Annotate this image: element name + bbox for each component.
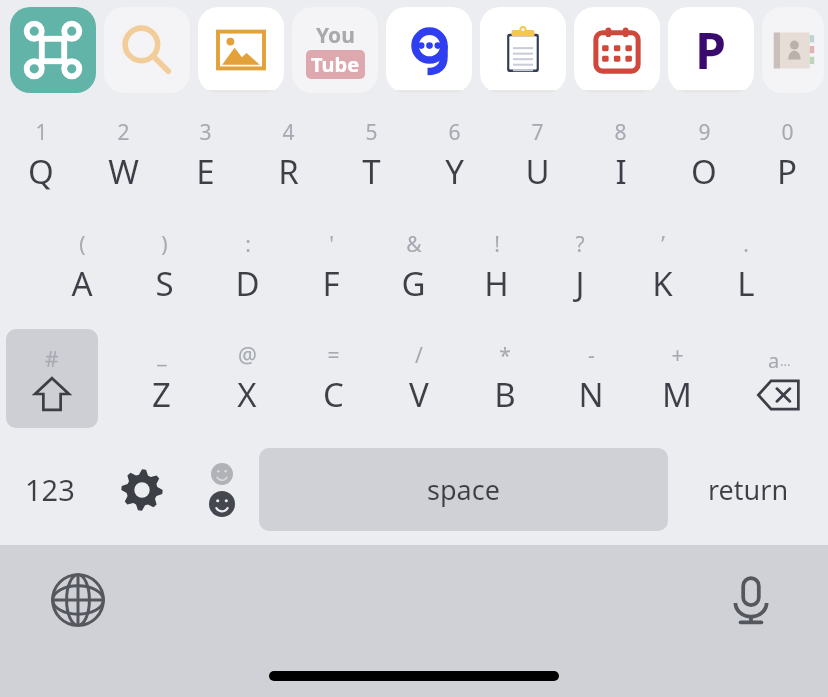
staticText: ?: [575, 230, 585, 259]
staticText: P: [777, 149, 797, 194]
button[interactable]: Shift: [6, 329, 98, 428]
staticText: J: [575, 261, 585, 306]
button[interactable]: 2: [82, 100, 164, 212]
button[interactable]: 0: [745, 100, 828, 212]
staticText: R: [278, 149, 299, 194]
button[interactable]: &: [372, 212, 455, 323]
staticText: -: [588, 341, 595, 370]
staticText: &: [406, 230, 422, 259]
staticText: 7: [531, 118, 544, 147]
button[interactable]: .: [704, 212, 787, 323]
button[interactable]: Emoji: [184, 434, 259, 545]
staticText: M: [662, 372, 692, 417]
button[interactable]: Voice input: [673, 545, 828, 655]
button[interactable]: 1: [0, 100, 82, 212]
staticText: .: [743, 230, 749, 259]
staticText: #: [45, 345, 59, 374]
staticText: Z: [152, 372, 171, 417]
staticText: 8: [614, 118, 627, 147]
staticText: 4: [282, 118, 295, 147]
staticText: =: [327, 341, 340, 370]
staticText: 9: [698, 118, 711, 147]
button[interactable]: App shortcut: [292, 7, 378, 93]
staticText: :: [245, 230, 251, 259]
staticText: I: [615, 149, 627, 194]
button[interactable]: 5: [330, 100, 413, 212]
staticText: A: [71, 261, 93, 306]
button[interactable]: (: [40, 212, 123, 323]
staticText: ’: [661, 230, 665, 259]
button[interactable]: return: [668, 434, 828, 545]
staticText: T: [362, 149, 381, 194]
button[interactable]: Change language: [0, 545, 155, 655]
staticText: 5: [365, 118, 378, 147]
button[interactable]: *: [462, 323, 548, 434]
staticText: 1: [35, 118, 48, 147]
button[interactable]: !: [455, 212, 538, 323]
button[interactable]: =: [290, 323, 376, 434]
staticText: You: [316, 21, 355, 50]
staticText: V: [409, 372, 429, 417]
staticText: E: [196, 149, 215, 194]
button[interactable]: 7: [496, 100, 579, 212]
button[interactable]: ?: [538, 212, 621, 323]
staticText: X: [237, 372, 257, 417]
staticText: @: [238, 341, 257, 370]
staticText: W: [108, 149, 139, 194]
staticText: ...: [780, 352, 791, 370]
button[interactable]: +: [634, 323, 720, 434]
button[interactable]: :: [206, 212, 289, 323]
button[interactable]: App shortcut: [104, 7, 190, 93]
button[interactable]: App shortcut: [198, 7, 284, 93]
staticText: P: [695, 16, 727, 84]
staticText: !: [494, 230, 500, 259]
button[interactable]: 3: [164, 100, 247, 212]
staticText: N: [578, 372, 604, 417]
button[interactable]: App shortcut: [668, 7, 754, 93]
staticText: G: [401, 261, 426, 306]
staticText: _: [157, 341, 167, 370]
staticText: 123: [25, 470, 75, 509]
staticText: ): [161, 230, 168, 259]
button[interactable]: 6: [413, 100, 496, 212]
staticText: F: [322, 261, 340, 306]
button[interactable]: _: [118, 323, 204, 434]
button[interactable]: /: [376, 323, 462, 434]
button[interactable]: App shortcut: [386, 7, 472, 93]
staticText: D: [235, 261, 260, 306]
staticText: S: [155, 261, 174, 306]
button[interactable]: App shortcut: [480, 7, 566, 93]
button[interactable]: App shortcut: [10, 7, 96, 93]
button[interactable]: -: [548, 323, 634, 434]
staticText: /: [415, 341, 423, 370]
staticText: +: [671, 341, 684, 370]
button[interactable]: Backspace: [729, 323, 828, 434]
button[interactable]: 123: [0, 434, 99, 545]
button[interactable]: 9: [662, 100, 745, 212]
button[interactable]: 8: [579, 100, 662, 212]
staticText: 3: [199, 118, 212, 147]
button[interactable]: space: [259, 448, 668, 531]
staticText: K: [652, 261, 673, 306]
button[interactable]: @: [204, 323, 290, 434]
staticText: ': [329, 230, 334, 259]
staticText: space: [427, 471, 500, 508]
staticText: return: [708, 471, 789, 508]
staticText: C: [323, 372, 344, 417]
staticText: H: [484, 261, 509, 306]
button[interactable]: 4: [247, 100, 330, 212]
staticText: 0: [781, 118, 794, 147]
staticText: O: [691, 149, 717, 194]
staticText: 2: [117, 118, 130, 147]
button[interactable]: ’: [621, 212, 704, 323]
button[interactable]: App shortcut: [762, 7, 824, 93]
staticText: Q: [28, 149, 54, 194]
staticText: 6: [448, 118, 461, 147]
staticText: B: [494, 372, 516, 417]
staticText: Tube: [311, 51, 360, 78]
staticText: *: [499, 341, 511, 370]
button[interactable]: Settings: [99, 434, 184, 545]
button[interactable]: App shortcut: [574, 7, 660, 93]
button[interactable]: ): [123, 212, 206, 323]
button[interactable]: ': [289, 212, 372, 323]
